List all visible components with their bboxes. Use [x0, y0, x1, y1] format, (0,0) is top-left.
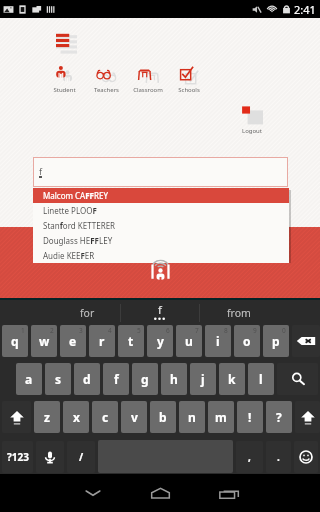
staticText: Student	[53, 86, 76, 94]
staticText: ?123	[7, 450, 29, 464]
staticText: 2	[50, 326, 54, 335]
button[interactable]: u	[176, 325, 202, 357]
button[interactable]: r	[89, 325, 115, 357]
button[interactable]: Stanford KETTERER	[33, 218, 289, 233]
staticText: z	[44, 409, 50, 425]
staticText: b	[159, 409, 167, 425]
staticText: Teachers	[94, 86, 119, 94]
staticText: Stanford KETTERER	[43, 220, 116, 231]
button[interactable]: f	[120, 300, 199, 325]
staticText: 7	[195, 326, 199, 335]
button[interactable]: s	[45, 363, 71, 395]
button[interactable]: .	[266, 441, 291, 473]
button[interactable]: Linette PLOOF	[33, 203, 289, 218]
staticText: 4	[108, 326, 112, 335]
button[interactable]: z	[34, 401, 60, 433]
staticText: Douglass HEFFLEY	[43, 235, 113, 246]
button[interactable]: o	[234, 325, 260, 357]
button[interactable]: Voice input	[36, 441, 64, 473]
staticText: 2:41	[294, 2, 316, 17]
staticText: p	[272, 333, 280, 349]
staticText: x	[73, 409, 80, 425]
button[interactable]: c	[92, 401, 118, 433]
button[interactable]: f	[33, 157, 288, 187]
button[interactable]: Recents	[212, 476, 246, 510]
staticText: u	[185, 333, 193, 349]
button[interactable]: Audie KEEFER	[33, 248, 289, 263]
staticText: f	[39, 165, 43, 177]
button[interactable]: Schools	[169, 64, 209, 94]
staticText: Malcom CAFFREY	[43, 190, 108, 201]
staticText: 5	[137, 326, 141, 335]
button[interactable]: Shift	[2, 401, 31, 433]
button[interactable]: h	[161, 363, 187, 395]
button[interactable]: for	[0, 300, 120, 325]
staticText: !	[248, 409, 252, 425]
button[interactable]: p	[263, 325, 289, 357]
button[interactable]: t	[118, 325, 144, 357]
button[interactable]: Home	[143, 476, 177, 510]
button[interactable]: Backspace	[292, 325, 320, 357]
staticText: w	[39, 333, 50, 349]
staticText: 0	[282, 326, 286, 335]
button[interactable]: i	[205, 325, 231, 357]
button[interactable]: ?123	[2, 441, 33, 473]
button[interactable]: from	[199, 300, 320, 325]
staticText: .	[277, 450, 280, 464]
button[interactable]: ?	[266, 401, 292, 433]
staticText: i	[216, 333, 220, 349]
staticText: s	[55, 371, 62, 387]
button[interactable]: Logout	[233, 106, 271, 135]
staticText: j	[201, 371, 205, 387]
staticText: o	[243, 333, 251, 349]
button[interactable]: Douglass HEFFLEY	[33, 233, 289, 248]
button[interactable]: k	[219, 363, 245, 395]
button[interactable]: Back	[76, 476, 110, 510]
button[interactable]: x	[63, 401, 89, 433]
staticText: n	[188, 409, 196, 425]
button[interactable]: Menu	[56, 33, 77, 53]
button[interactable]: e	[60, 325, 86, 357]
staticText: 6	[166, 326, 170, 335]
button[interactable]: m	[208, 401, 234, 433]
button[interactable]: /	[67, 441, 95, 473]
button[interactable]: q	[2, 325, 28, 357]
staticText: ?	[276, 409, 282, 425]
staticText: r	[99, 333, 105, 349]
staticText: from	[227, 306, 251, 320]
button[interactable]: a	[16, 363, 42, 395]
button[interactable]: v	[121, 401, 147, 433]
staticText: d	[83, 371, 91, 387]
button[interactable]: l	[248, 363, 274, 395]
staticText: for	[80, 306, 95, 320]
staticText: h	[170, 371, 178, 387]
button[interactable]: ,	[236, 441, 263, 473]
button[interactable]: g	[132, 363, 158, 395]
staticText: ,	[248, 450, 251, 464]
button[interactable]: w	[31, 325, 57, 357]
button[interactable]: j	[190, 363, 216, 395]
button[interactable]: Shift	[295, 401, 320, 433]
staticText: a	[25, 371, 33, 387]
staticText: m	[215, 409, 227, 425]
staticText: 3	[79, 326, 83, 335]
button[interactable]: Classroom	[128, 64, 168, 94]
button[interactable]: !	[237, 401, 263, 433]
button[interactable]: y	[147, 325, 173, 357]
button[interactable]: Emoji	[294, 441, 318, 473]
button[interactable]: d	[74, 363, 100, 395]
staticText: /	[79, 450, 84, 464]
button[interactable]: Malcom CAFFREY	[33, 188, 289, 203]
button[interactable]: Student	[44, 64, 84, 94]
staticText: 8	[224, 326, 228, 335]
button[interactable]: Teachers	[86, 64, 126, 94]
staticText: q	[11, 333, 19, 349]
button[interactable]: n	[179, 401, 205, 433]
button[interactable]: f	[103, 363, 129, 395]
staticText: Audie KEEFER	[43, 250, 95, 261]
button[interactable]: b	[150, 401, 176, 433]
staticText: Classroom	[133, 86, 163, 94]
button[interactable]: Search	[277, 363, 318, 395]
staticText: Schools	[178, 86, 200, 94]
